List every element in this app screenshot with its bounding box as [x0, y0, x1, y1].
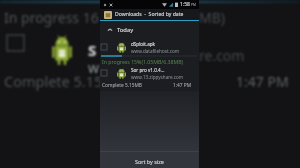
- button[interactable]: dSploit.apk: [101, 39, 199, 55]
- button[interactable]: Collapse: [104, 21, 199, 39]
- staticText: 1:58: [180, 1, 190, 8]
- staticText: 1:47 PM: [236, 72, 289, 91]
- staticText: 1:47 PM: [173, 82, 192, 89]
- staticText: MB): [199, 8, 225, 27]
- staticText: dSploit.apk: [131, 41, 156, 47]
- staticText: w: [88, 58, 100, 77]
- staticText: www.13.zippyshare.com: [131, 74, 184, 80]
- button[interactable]: Sor pro v1.0.4...: [101, 65, 199, 81]
- button[interactable]: Downloads: [104, 9, 199, 20]
- staticText: www.datafilehost.com: [131, 48, 180, 54]
- staticText: Complete 5.15MB: [102, 82, 142, 89]
- staticText: Downloads - Sorted by date: [115, 11, 184, 18]
- staticText: PM: [191, 3, 196, 7]
- staticText: Today: [117, 26, 134, 34]
- other: Downloads: [104, 11, 112, 19]
- staticText: Sort by size: [135, 158, 164, 165]
- other: Collapse: [107, 27, 113, 33]
- staticText: S: [88, 40, 97, 60]
- button[interactable]: Sort by size: [100, 152, 199, 168]
- staticText: Sor pro v1.0.4...: [131, 67, 165, 73]
- staticText: In progress 15%(1.05MB/6.38MB): [102, 58, 184, 65]
- staticText: re.com: [199, 46, 245, 65]
- staticText: Complete 5.15: [4, 71, 103, 91]
- staticText: In progress 16: [4, 8, 99, 27]
